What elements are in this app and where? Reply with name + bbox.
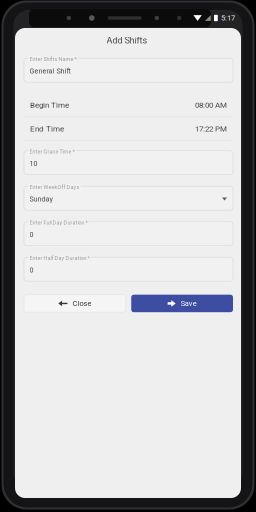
staticText: Add Shifts <box>106 35 147 46</box>
staticText: Enter Full Day Duration * <box>29 219 87 226</box>
staticText: Begin Time <box>30 100 69 110</box>
button[interactable]: Sunday <box>24 187 233 211</box>
staticText: Enter Grace Time * <box>29 148 74 155</box>
button[interactable]: Close <box>24 295 126 312</box>
button[interactable]: Save <box>131 295 233 312</box>
staticText: 0 <box>29 266 33 274</box>
button[interactable]: 0 <box>24 258 233 282</box>
staticText: End Time <box>30 124 64 133</box>
button[interactable]: 10 <box>24 151 233 175</box>
staticText: Enter WeekOff Days <box>29 184 79 190</box>
button[interactable]: End Time <box>24 117 233 140</box>
staticText: General Shift <box>29 67 70 75</box>
staticText: 10 <box>29 159 37 168</box>
staticText: 08:00 AM <box>195 100 227 110</box>
staticText: 0 <box>29 230 33 239</box>
staticText: Sunday <box>29 195 52 203</box>
staticText: 5:17 <box>221 14 235 22</box>
button[interactable]: Begin Time <box>24 93 233 116</box>
staticText: Close <box>72 299 91 308</box>
staticText: 17:22 PM <box>195 124 227 133</box>
staticText: Enter Shifts Name * <box>29 56 76 62</box>
staticText: Enter Half Day Duration * <box>29 255 89 261</box>
staticText: Save <box>181 299 197 308</box>
button[interactable]: 0 <box>24 222 233 246</box>
button[interactable]: General Shift <box>24 59 233 83</box>
